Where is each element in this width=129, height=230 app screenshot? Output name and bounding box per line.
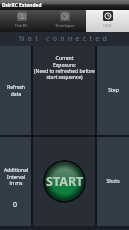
- staticText: Not connected: [19, 34, 111, 44]
- staticText: Current Exposure: (Need to refreshed bef…: [34, 55, 95, 80]
- button[interactable]: Additional Interval in ms: [0, 137, 31, 226]
- staticText: Additional Interval in ms: [4, 167, 28, 186]
- button[interactable]: Step: [97, 46, 129, 135]
- button[interactable]: START: [43, 160, 86, 203]
- button[interactable]: DslrRC: [0, 10, 43, 32]
- staticText: Shots: [106, 178, 120, 185]
- button[interactable]: HDR: [86, 10, 129, 32]
- staticText: 0: [13, 200, 18, 210]
- staticText: START: [46, 173, 84, 190]
- staticText: Step: [108, 87, 119, 94]
- button[interactable]: Refresh data: [0, 46, 31, 135]
- staticText: DslrRC: [15, 23, 28, 29]
- staticText: Timelapse: [55, 23, 75, 29]
- button[interactable]: Timelapse: [43, 10, 86, 32]
- staticText: HDR: [103, 23, 112, 29]
- staticText: DslrRC Extended: [2, 2, 42, 9]
- button[interactable]: Shots: [97, 137, 129, 226]
- staticText: Refresh data: [7, 84, 25, 97]
